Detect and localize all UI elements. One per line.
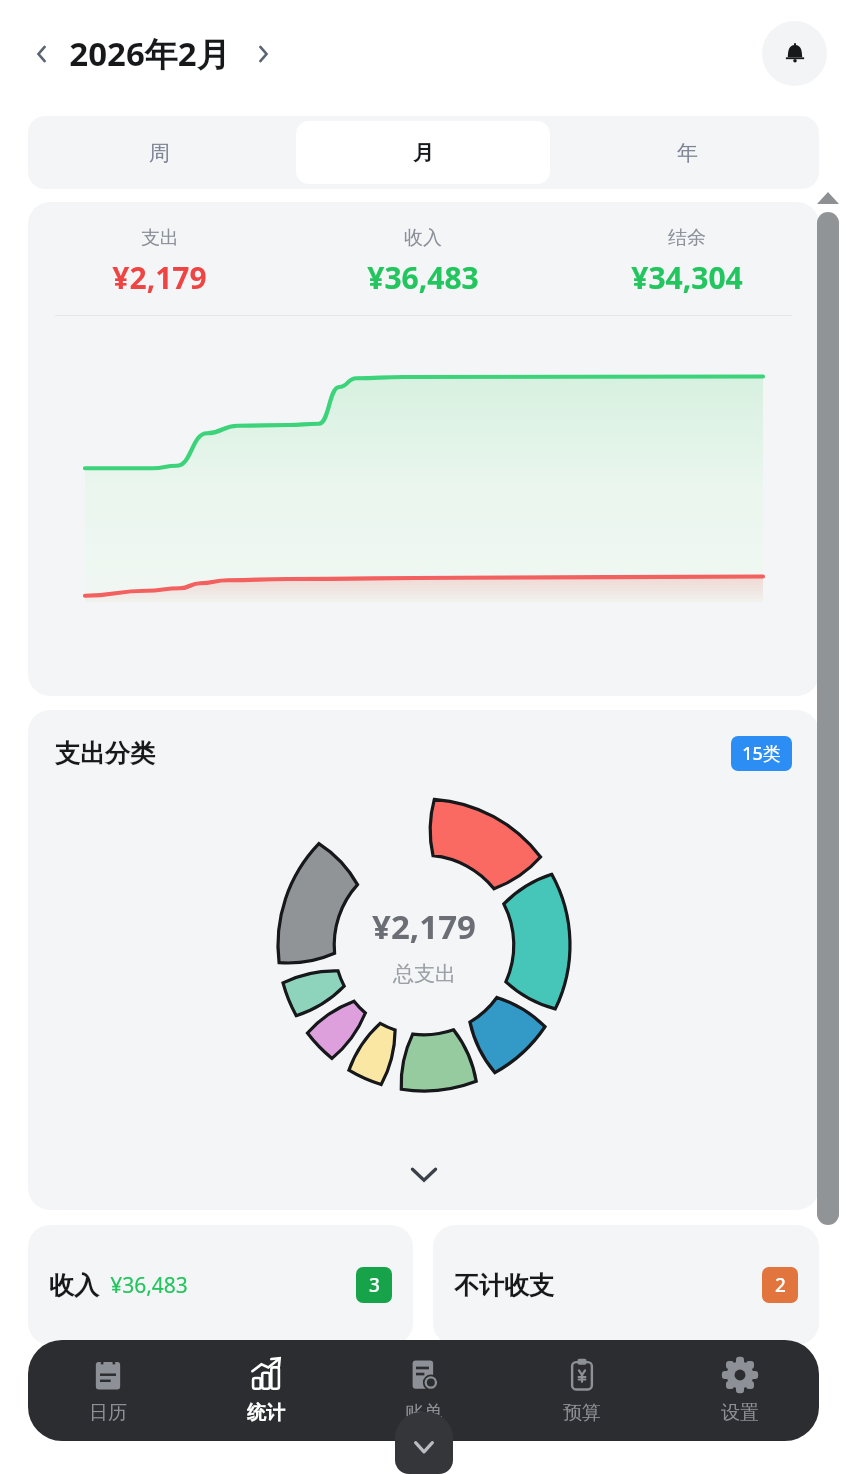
staticText: 2	[775, 1272, 786, 1298]
staticText: 2026年2月	[69, 31, 230, 76]
staticText: 预算	[563, 1401, 601, 1425]
staticText: ¥2,179	[112, 257, 207, 298]
button[interactable]: 设置	[661, 1340, 819, 1441]
button[interactable]: 日历	[28, 1340, 187, 1441]
button[interactable]: 账单	[345, 1340, 503, 1441]
button[interactable]: 15类	[731, 736, 792, 771]
staticText: 日历	[89, 1401, 127, 1425]
button[interactable]: 年	[560, 121, 814, 184]
button[interactable]: 预算	[503, 1340, 661, 1441]
button[interactable]: 不计收支	[433, 1225, 819, 1345]
staticText: 不计收支	[454, 1270, 554, 1301]
staticText: 总支出	[393, 961, 456, 987]
button[interactable]: 月	[296, 121, 550, 184]
staticText: 3	[369, 1272, 380, 1298]
staticText: ¥34,304	[631, 257, 743, 298]
staticText: ¥2,179	[372, 904, 476, 949]
staticText: 设置	[721, 1401, 759, 1425]
button[interactable]: Collapse	[395, 1412, 453, 1474]
button[interactable]: Notifications	[762, 21, 827, 86]
button[interactable]: 支出	[28, 202, 819, 696]
button[interactable]: Previous month	[20, 32, 64, 76]
staticText: 周	[149, 140, 170, 166]
staticText: 年	[677, 140, 698, 166]
staticText: ¥36,483	[110, 1271, 188, 1300]
button[interactable]: 收入	[28, 1225, 413, 1345]
staticText: 账单	[405, 1401, 443, 1425]
staticText: 统计	[247, 1401, 285, 1425]
staticText: ¥36,483	[367, 257, 479, 298]
staticText: 支出分类	[55, 738, 155, 769]
button[interactable]: Expand categories	[28, 1144, 819, 1204]
staticText: 收入	[49, 1270, 99, 1301]
staticText: 结余	[668, 226, 706, 250]
staticText: 收入	[404, 226, 442, 250]
staticText: 月	[413, 140, 434, 166]
button[interactable]: 统计	[187, 1340, 345, 1441]
staticText: 支出	[141, 226, 179, 250]
button[interactable]: Next month	[241, 32, 285, 76]
button[interactable]: 周	[33, 121, 286, 184]
staticText: 15类	[742, 741, 781, 766]
